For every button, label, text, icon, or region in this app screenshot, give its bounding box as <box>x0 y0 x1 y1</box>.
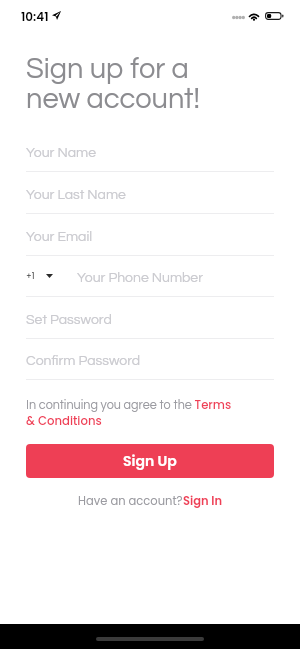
staticText: Your Last Name <box>26 188 126 202</box>
staticText: In continuing you agree to the Terms <box>26 397 232 413</box>
staticText: Have an account? <box>78 493 183 509</box>
button[interactable]: Your Email <box>26 214 274 256</box>
button[interactable]: Your Name <box>26 130 274 172</box>
other: Location active <box>52 11 61 20</box>
button[interactable]: Select country code <box>26 269 53 283</box>
staticText: Your Phone Number <box>77 271 203 285</box>
staticText: Your Name <box>26 146 96 160</box>
other: Wi-Fi <box>248 12 260 20</box>
staticText: & Conditions <box>26 413 102 429</box>
staticText: Sign Up <box>123 451 177 471</box>
staticText: Sign up for a new account! <box>26 54 200 114</box>
staticText: Confirm Password <box>26 354 141 368</box>
button[interactable]: Have an account? <box>78 493 223 509</box>
button[interactable]: Confirm Password <box>26 338 274 380</box>
staticText: Your Email <box>26 230 93 244</box>
staticText: 10:41 <box>21 8 49 25</box>
staticText: Set Password <box>26 313 112 327</box>
staticText: Sign In <box>183 493 223 509</box>
other: Battery <box>265 12 284 20</box>
button[interactable]: Your Last Name <box>26 172 274 214</box>
button[interactable]: In continuing you agree to the Terms <box>26 397 274 429</box>
staticText: +1 <box>26 271 35 282</box>
button[interactable]: Set Password <box>26 297 274 339</box>
button[interactable]: Sign Up <box>26 444 274 478</box>
